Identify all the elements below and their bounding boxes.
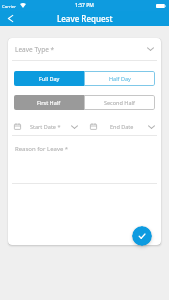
staticText: Reason for Leave * bbox=[15, 145, 69, 153]
staticText: Second Half bbox=[104, 99, 135, 106]
button[interactable]: Second Half bbox=[84, 95, 155, 110]
staticText: Full Day bbox=[39, 75, 60, 82]
staticText: 1:57 PM bbox=[75, 2, 94, 9]
button[interactable]: Full Day bbox=[14, 71, 84, 86]
button[interactable]: Leave Type * bbox=[8, 38, 161, 60]
button[interactable]: Back bbox=[0, 11, 21, 26]
button[interactable]: End Date bbox=[84, 123, 161, 130]
staticText: Leave Type * bbox=[15, 45, 55, 54]
staticText: First Half bbox=[37, 99, 61, 106]
button[interactable]: Reason for Leave * bbox=[8, 136, 161, 183]
staticText: Carrier bbox=[2, 3, 16, 9]
button[interactable]: First Half bbox=[14, 95, 84, 110]
staticText: Half Day bbox=[109, 75, 131, 82]
button[interactable]: Start Date * bbox=[8, 123, 84, 130]
button[interactable]: Submit bbox=[132, 226, 152, 246]
staticText: Leave Request bbox=[57, 13, 113, 24]
button[interactable]: Half Day bbox=[84, 71, 155, 86]
staticText: Start Date * bbox=[30, 123, 61, 130]
staticText: End Date bbox=[110, 123, 134, 130]
